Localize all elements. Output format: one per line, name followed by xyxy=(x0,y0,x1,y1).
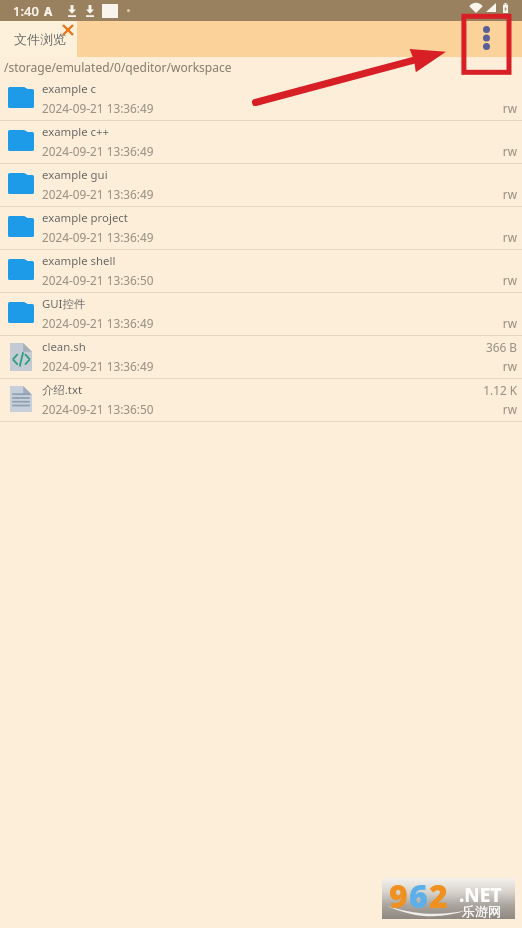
staticText: rw xyxy=(502,358,517,374)
button[interactable]: 介绍.txt xyxy=(0,379,522,422)
staticText: 2024-09-21 13:36:49 xyxy=(42,100,154,116)
staticText: 2024-09-21 13:36:50 xyxy=(42,272,154,288)
staticText: 2024-09-21 13:36:49 xyxy=(42,358,154,374)
staticText: example gui xyxy=(42,167,108,183)
button[interactable]: Close tab xyxy=(63,25,73,35)
button[interactable]: example project xyxy=(0,207,522,250)
button[interactable]: example c++ xyxy=(0,121,522,164)
button[interactable]: example gui xyxy=(0,164,522,207)
button[interactable]: GUI控件 xyxy=(0,293,522,336)
staticText: 2024-09-21 13:36:49 xyxy=(42,229,154,245)
staticText: example project xyxy=(42,210,128,226)
staticText: 366 B xyxy=(486,339,517,355)
staticText: 1:40 xyxy=(13,2,39,20)
staticText: 2024-09-21 13:36:50 xyxy=(42,401,154,417)
staticText: /storage/emulated/0/qeditor/workspace xyxy=(4,59,232,75)
staticText: 介绍.txt xyxy=(42,382,83,398)
staticText: clean.sh xyxy=(42,339,86,355)
button[interactable]: example c xyxy=(0,78,522,121)
button[interactable]: clean.sh xyxy=(0,336,522,379)
staticText: example shell xyxy=(42,253,116,269)
staticText: example c xyxy=(42,81,97,97)
staticText: 1.12 K xyxy=(483,382,517,398)
staticText: 2024-09-21 13:36:49 xyxy=(42,143,154,159)
button[interactable]: More options xyxy=(468,21,504,57)
staticText: 乐游网 xyxy=(462,903,501,919)
staticText: 2024-09-21 13:36:49 xyxy=(42,315,154,331)
staticText: 6 xyxy=(409,874,429,915)
staticText: rw xyxy=(502,315,517,331)
staticText: 2024-09-21 13:36:49 xyxy=(42,186,154,202)
staticText: .NET xyxy=(459,882,502,908)
button[interactable]: example shell xyxy=(0,250,522,293)
staticText: GUI控件 xyxy=(42,296,86,312)
staticText: rw xyxy=(502,229,517,245)
staticText: rw xyxy=(502,100,517,116)
staticText: rw xyxy=(502,401,517,417)
staticText: 9 xyxy=(389,874,409,915)
staticText: example c++ xyxy=(42,124,110,140)
staticText: A xyxy=(44,3,53,19)
staticText: 文件浏览 xyxy=(14,31,66,47)
staticText: rw xyxy=(502,143,517,159)
button[interactable]: 文件浏览 xyxy=(0,21,77,57)
staticText: rw xyxy=(502,186,517,202)
staticText: 2 xyxy=(429,874,449,915)
staticText: rw xyxy=(502,272,517,288)
